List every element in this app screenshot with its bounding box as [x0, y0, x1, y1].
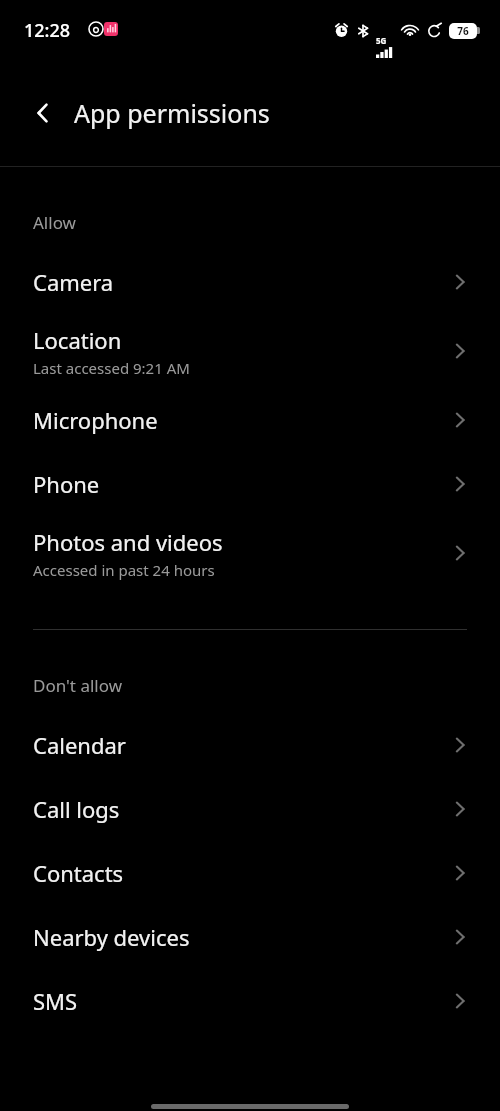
button[interactable]: Camera	[0, 250, 500, 314]
button[interactable]: Calendar	[0, 713, 500, 777]
button[interactable]: Photos and videos	[0, 516, 500, 590]
staticText: Nearby devices	[33, 922, 190, 952]
button[interactable]: Microphone	[0, 388, 500, 452]
button[interactable]: Nearby devices	[0, 905, 500, 969]
staticText: Last accessed 9:21 AM	[33, 358, 190, 378]
staticText: Contacts	[33, 858, 124, 888]
staticText: Don't allow	[33, 674, 123, 697]
button[interactable]: SMS	[0, 969, 500, 1033]
button[interactable]: Back	[20, 90, 66, 136]
button[interactable]: Phone	[0, 452, 500, 516]
staticText: SMS	[33, 986, 78, 1016]
staticText: Camera	[33, 267, 114, 297]
staticText: 5G	[376, 35, 387, 46]
staticText: Calendar	[33, 730, 126, 760]
staticText: Accessed in past 24 hours	[33, 560, 215, 580]
staticText: 76	[457, 24, 469, 38]
staticText: Microphone	[33, 405, 158, 435]
button[interactable]: Call logs	[0, 777, 500, 841]
staticText: Phone	[33, 469, 100, 499]
staticText: Location	[33, 325, 122, 355]
staticText: Photos and videos	[33, 527, 223, 557]
staticText: 12:28	[24, 18, 71, 43]
staticText: App permissions	[74, 96, 270, 130]
staticText: Call logs	[33, 794, 120, 824]
button[interactable]: Contacts	[0, 841, 500, 905]
staticText: Allow	[33, 211, 76, 234]
button[interactable]: Location	[0, 314, 500, 388]
